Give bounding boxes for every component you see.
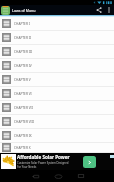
staticText: CHAPTER III — [14, 50, 32, 54]
staticText: CHAPTER II — [14, 36, 31, 40]
staticText: CHAPTER X — [14, 146, 31, 150]
staticText: Laws of Manu — [12, 8, 36, 13]
staticText: CHAPTER VI — [14, 92, 32, 96]
staticText: CHAPTER IV — [14, 64, 32, 68]
button[interactable]: Open advertisement — [83, 156, 96, 168]
button[interactable]: CHAPTER III — [0, 45, 114, 59]
staticText: CHAPTER V — [14, 78, 31, 82]
staticText: For Your Needs — [17, 165, 37, 169]
staticText: CHAPTER IX — [14, 134, 32, 138]
staticText: CHAPTER VIII — [14, 120, 34, 124]
button[interactable]: CHAPTER V — [0, 73, 114, 87]
button[interactable]: More options — [104, 5, 113, 15]
button[interactable]: App icon — [1, 6, 10, 15]
button[interactable]: Back — [24, 170, 46, 182]
staticText: CHAPTER VII — [14, 106, 33, 110]
button[interactable]: CHAPTER VIII — [0, 115, 114, 129]
button[interactable]: CHAPTER X — [0, 143, 114, 153]
staticText: Affordable Solar Power — [17, 154, 70, 160]
staticText: CHAPTER I — [14, 22, 30, 26]
button[interactable]: Recent apps — [70, 170, 92, 182]
staticText: Customize Solar Power System Designed — [17, 161, 69, 165]
button[interactable]: Affordable Solar Power — [0, 153, 114, 170]
button[interactable]: CHAPTER IV — [0, 59, 114, 73]
button[interactable]: CHAPTER VI — [0, 87, 114, 101]
button[interactable]: Share — [93, 5, 104, 15]
button[interactable]: Home — [47, 170, 69, 182]
button[interactable]: CHAPTER VII — [0, 101, 114, 115]
button[interactable]: CHAPTER IX — [0, 129, 114, 143]
button[interactable]: CHAPTER II — [0, 31, 114, 45]
button[interactable]: CHAPTER I — [0, 17, 114, 31]
